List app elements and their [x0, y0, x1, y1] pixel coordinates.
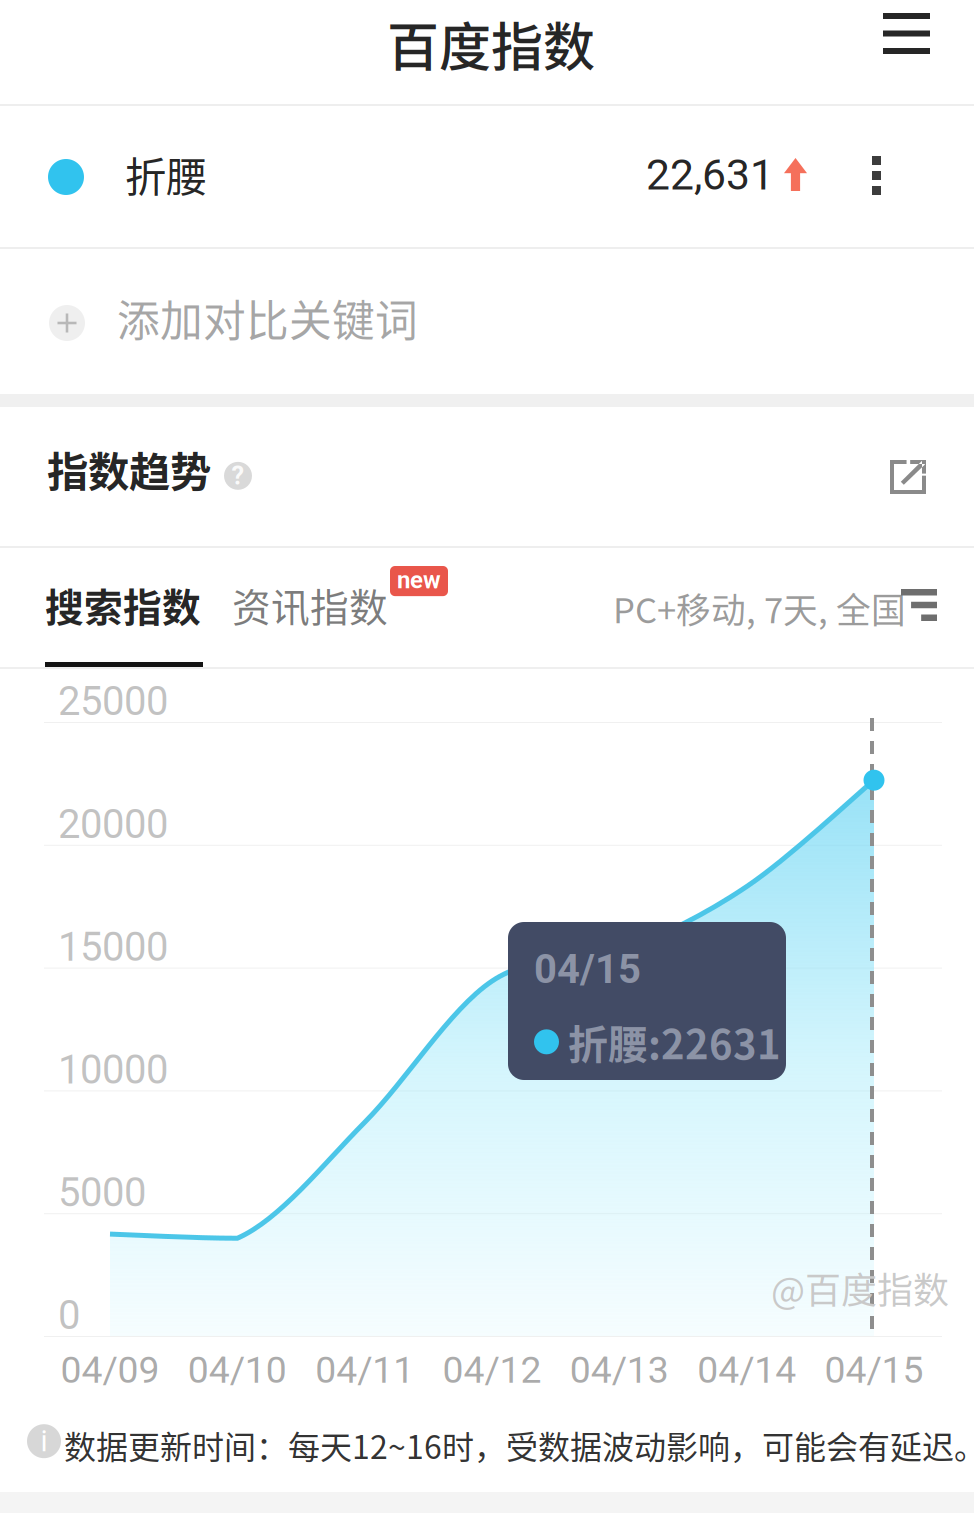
- staticText: 22,631: [646, 150, 774, 200]
- staticText: 04/12: [442, 1348, 541, 1392]
- button[interactable]: 搜索指数: [0, 548, 204, 669]
- staticText: 折腰:22631: [568, 1013, 781, 1071]
- staticText: 15000: [58, 924, 168, 970]
- staticText: 指数趋势: [47, 439, 211, 499]
- staticText: 04/13: [570, 1348, 669, 1392]
- staticText: 25000: [58, 678, 168, 725]
- staticText: 5000: [58, 1169, 146, 1216]
- staticText: 折腰: [125, 144, 207, 204]
- staticText: 04/15: [534, 946, 641, 993]
- staticText: 20000: [58, 801, 168, 848]
- staticText: 添加对比关键词: [117, 287, 418, 349]
- staticText: 04/15: [824, 1348, 923, 1392]
- staticText: 数据更新时间：每天12~16时，受数据波动影响，可能会有延迟。: [64, 1422, 974, 1468]
- staticText: @百度指数: [771, 1262, 949, 1314]
- staticText: 0: [58, 1292, 80, 1339]
- staticText: PC+移动, 7天, 全国: [613, 583, 906, 633]
- staticText: i: [40, 1424, 47, 1458]
- button[interactable]: 折腰: [0, 106, 974, 249]
- staticText: 搜索指数: [45, 577, 201, 633]
- staticText: new: [397, 566, 441, 594]
- staticText: ?: [231, 461, 244, 491]
- staticText: 04/10: [188, 1348, 287, 1392]
- staticText: 04/11: [315, 1348, 414, 1392]
- button[interactable]: Menu: [849, 0, 974, 102]
- button[interactable]: 资讯指数: [212, 548, 408, 669]
- staticText: 资讯指数: [232, 577, 388, 633]
- staticText: 04/14: [697, 1348, 796, 1392]
- button[interactable]: Open full chart: [856, 407, 974, 528]
- staticText: 04/09: [60, 1348, 159, 1392]
- staticText: 10000: [58, 1046, 168, 1093]
- button[interactable]: Filters: [591, 548, 974, 669]
- button[interactable]: 添加对比关键词: [0, 249, 974, 394]
- staticText: 百度指数: [387, 6, 595, 81]
